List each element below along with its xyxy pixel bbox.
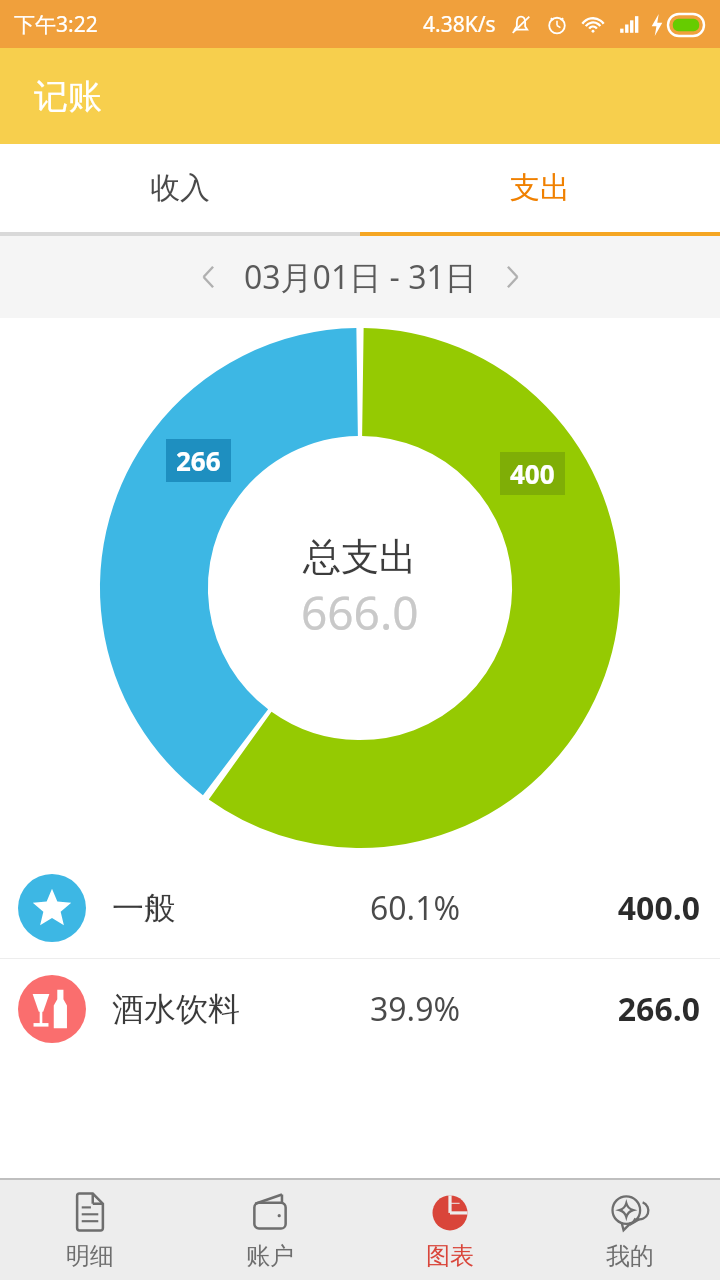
- staticText: 支出: [510, 169, 570, 207]
- staticText: 明细: [66, 1241, 114, 1271]
- staticText: 记账: [34, 75, 102, 118]
- staticText: 收入: [150, 169, 210, 207]
- staticText: 266.0: [540, 987, 700, 1031]
- button[interactable]: 收入: [0, 144, 360, 232]
- button[interactable]: 一般: [0, 858, 720, 958]
- other: Next period: [495, 260, 529, 294]
- button[interactable]: 图表: [360, 1180, 540, 1280]
- other: Previous period: [192, 260, 226, 294]
- staticText: 我的: [606, 1241, 654, 1271]
- staticText: 图表: [426, 1241, 474, 1271]
- staticText: 下午3:22: [14, 10, 98, 39]
- staticText: 4.38K/s: [423, 10, 496, 39]
- staticText: 03月01日 - 31日: [244, 255, 477, 299]
- staticText: 一般: [112, 888, 370, 928]
- staticText: 60.1%: [370, 886, 540, 930]
- button[interactable]: Previous period: [0, 236, 720, 318]
- button[interactable]: 支出: [360, 144, 720, 232]
- button[interactable]: 酒水饮料: [0, 959, 720, 1059]
- button[interactable]: 我的: [540, 1180, 720, 1280]
- staticText: 400.0: [540, 886, 700, 930]
- staticText: 酒水饮料: [112, 989, 370, 1029]
- staticText: 39.9%: [370, 987, 540, 1031]
- button[interactable]: 明细: [0, 1180, 180, 1280]
- button[interactable]: 账户: [180, 1180, 360, 1280]
- staticText: 总支出: [303, 533, 417, 581]
- staticText: 666.0: [301, 581, 419, 644]
- staticText: 266: [176, 443, 221, 478]
- staticText: 400: [510, 456, 555, 491]
- staticText: 账户: [246, 1241, 294, 1271]
